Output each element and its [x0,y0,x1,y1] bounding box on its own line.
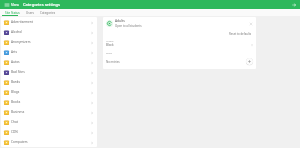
staticText: Business [11,110,89,114]
staticText: Block [106,43,251,47]
button[interactable]: Business [1,107,97,117]
button[interactable]: Bad Sites [1,67,97,77]
staticText: Site Status [5,11,20,15]
staticText: Menu [11,3,20,7]
staticText: Categories [40,11,56,15]
staticText: Blogs [11,90,89,94]
staticText: Advertisement [11,20,89,24]
staticText: Books [11,100,89,104]
button[interactable]: Computers [1,137,97,147]
button[interactable]: Chat [1,117,97,127]
staticText: Reset to defaults [229,32,252,36]
button[interactable]: Anonymizers [1,37,97,47]
button[interactable]: Users [23,9,37,16]
button[interactable]: Banks [1,77,97,87]
button[interactable]: Log out [290,1,297,8]
staticText: Autos [11,60,89,64]
button[interactable]: Arts [1,47,97,57]
button[interactable]: Reset to defaults [228,31,253,37]
staticText: Access [106,39,114,42]
staticText: Computers [11,140,89,144]
button[interactable]: Books [1,97,97,107]
staticText: Banks [11,80,89,84]
staticText: Alcohol [11,30,89,34]
button[interactable]: Menu [3,1,10,8]
staticText: Categories settings [23,2,60,7]
staticText: Anonymizers [11,40,89,44]
staticText: Adults [115,19,125,23]
button[interactable]: Add rule [246,58,253,65]
staticText: Users [26,11,34,15]
button[interactable]: Advertisement [1,17,97,27]
button[interactable]: CDN [1,127,97,137]
staticText: Open to all students [115,24,142,28]
staticText: No entries [106,60,246,64]
staticText: Chat [11,120,89,124]
button[interactable]: Block [106,43,253,47]
button[interactable]: Blogs [1,87,97,97]
staticText: Arts [11,50,89,54]
button[interactable]: Alcohol [1,27,97,37]
button[interactable]: Autos [1,57,97,67]
button[interactable]: Site Status [2,9,23,16]
button[interactable]: Categories [37,9,59,16]
staticText: CDN [11,130,89,134]
staticText: Bad Sites [11,70,89,74]
button[interactable]: Close [248,21,253,26]
staticText: Rules [106,51,113,54]
